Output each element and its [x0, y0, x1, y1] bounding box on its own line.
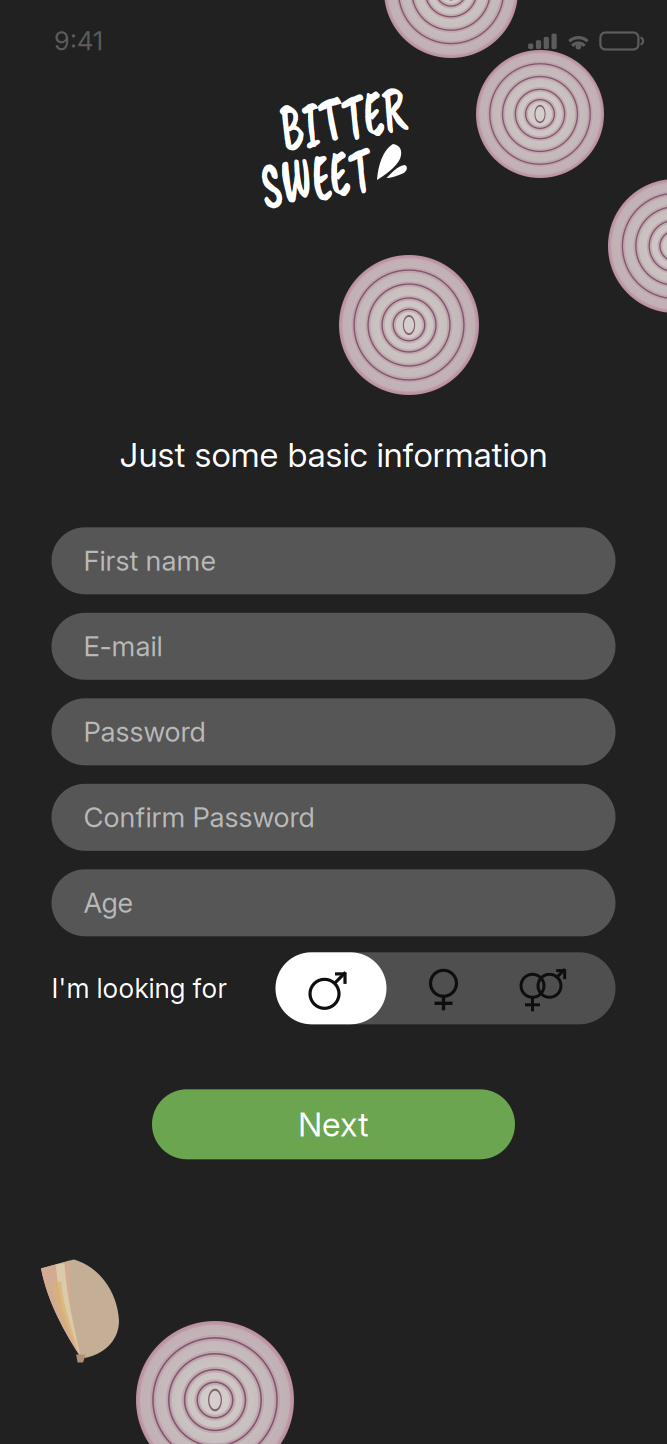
staticText: Age	[83, 886, 133, 919]
staticText: Next	[298, 1104, 369, 1144]
staticText: I'm looking for	[51, 972, 227, 1004]
staticText: SWEET	[236, 135, 395, 219]
button[interactable]: Confirm Password	[51, 784, 615, 851]
staticText: Password	[83, 715, 205, 748]
staticText: Confirm Password	[83, 801, 314, 834]
button[interactable]: Looking for women	[386, 952, 500, 1024]
staticText: BITTER	[252, 76, 433, 160]
button[interactable]: First name	[51, 527, 615, 594]
staticText: 9:41	[54, 25, 103, 56]
button[interactable]: Password	[51, 698, 615, 765]
button[interactable]: E-mail	[51, 613, 615, 680]
staticText: First name	[83, 544, 216, 577]
button[interactable]: Looking for men	[275, 952, 386, 1024]
staticText: E-mail	[83, 630, 162, 663]
button[interactable]: Looking for everyone	[500, 952, 615, 1024]
button[interactable]: Age	[51, 869, 615, 936]
staticText: Just some basic information	[119, 434, 547, 475]
button[interactable]: Next	[152, 1089, 515, 1159]
